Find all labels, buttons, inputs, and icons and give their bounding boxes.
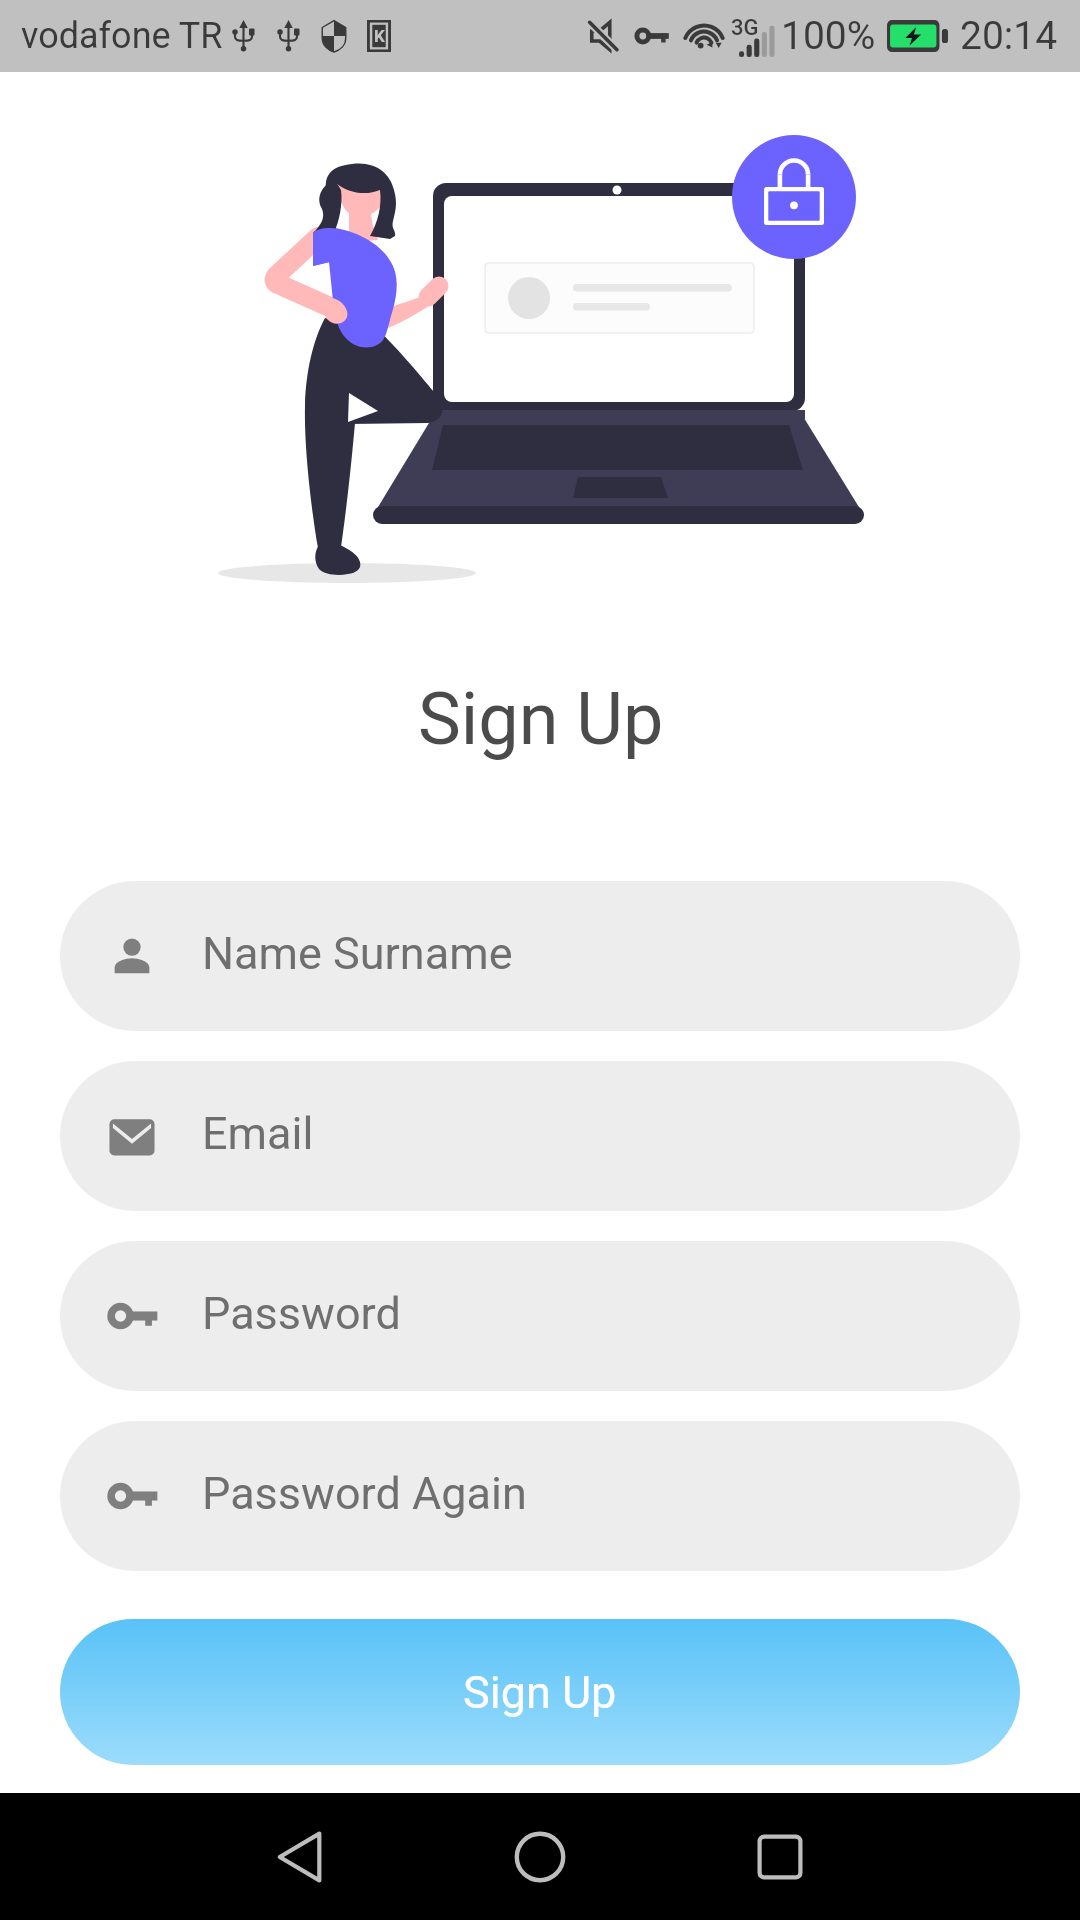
staticText: Email — [202, 1107, 314, 1160]
staticText: 3G — [731, 15, 759, 41]
button[interactable]: Password — [60, 1241, 1020, 1391]
button[interactable]: Name Surname — [60, 881, 1020, 1031]
staticText: Password Again — [202, 1467, 527, 1520]
button[interactable]: Back — [248, 1805, 352, 1909]
staticText: K — [374, 26, 385, 46]
staticText: vodafone TR — [21, 15, 223, 57]
button[interactable]: Sign Up — [60, 1619, 1020, 1765]
staticText: 100% — [781, 13, 876, 59]
staticText: Sign Up — [418, 677, 664, 761]
button[interactable]: Password Again — [60, 1421, 1020, 1571]
staticText: Sign Up — [463, 1666, 617, 1719]
staticText: 20:14 — [960, 13, 1058, 59]
button[interactable]: Recent apps — [728, 1805, 832, 1909]
button[interactable]: Email — [60, 1061, 1020, 1211]
button[interactable]: Home — [488, 1805, 592, 1909]
staticText: Name Surname — [202, 927, 513, 980]
staticText: Password — [202, 1287, 401, 1340]
